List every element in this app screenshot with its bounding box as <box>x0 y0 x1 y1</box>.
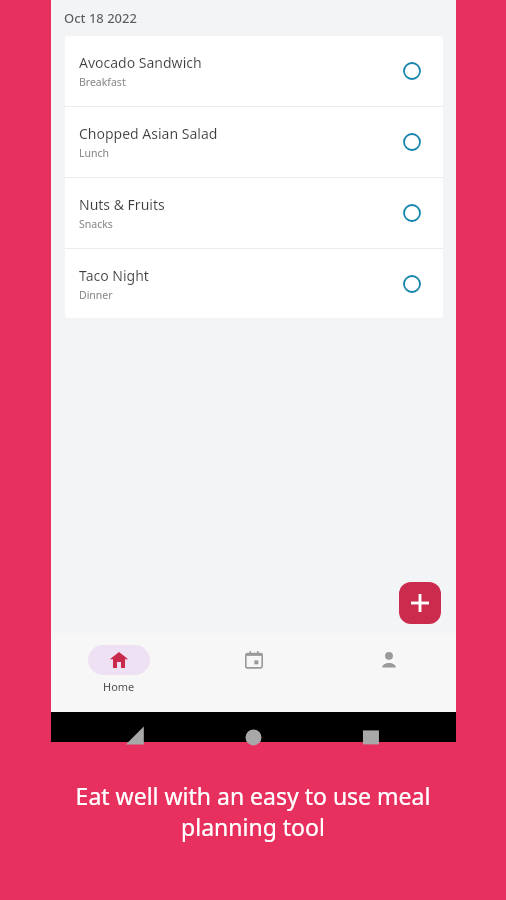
staticText: Nuts & Fruits <box>79 195 165 214</box>
button[interactable]: Nuts & Fruits <box>65 178 443 248</box>
button[interactable]: Mark Chopped Asian Salad done <box>399 129 425 155</box>
button[interactable]: Calendar <box>186 633 321 712</box>
staticText: Dinner <box>79 288 113 302</box>
button[interactable]: Mark Nuts & Fruits done <box>399 200 425 226</box>
staticText: Lunch <box>79 146 110 160</box>
button[interactable]: Chopped Asian Salad <box>65 107 443 177</box>
staticText: Chopped Asian Salad <box>79 124 218 143</box>
button[interactable]: Home <box>51 633 186 712</box>
button[interactable]: Avocado Sandwich <box>65 36 443 106</box>
staticText: Eat well with an easy to use meal planni… <box>16 780 490 843</box>
staticText: Breakfast <box>79 75 126 89</box>
staticText: Oct 18 2022 <box>64 9 137 27</box>
staticText: Taco Night <box>79 266 149 285</box>
staticText: Snacks <box>79 217 113 231</box>
staticText: Home <box>103 679 135 694</box>
staticText: Avocado Sandwich <box>79 53 202 72</box>
button[interactable]: Taco Night <box>65 249 443 318</box>
button[interactable]: Mark Taco Night done <box>399 271 425 297</box>
button[interactable]: Add meal <box>399 582 441 624</box>
button[interactable]: Profile <box>321 633 456 712</box>
button[interactable]: Mark Avocado Sandwich done <box>399 58 425 84</box>
